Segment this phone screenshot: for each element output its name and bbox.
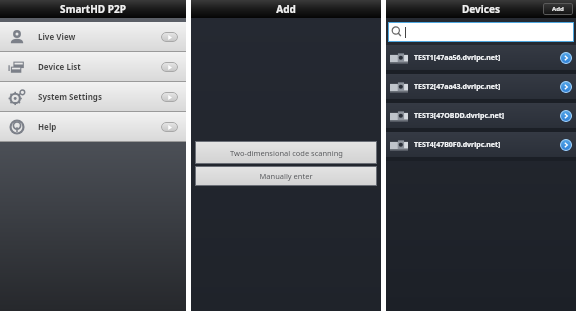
button[interactable]: TEST3[47OBDD.dvripc.net] — [386, 103, 576, 128]
staticText: Add — [276, 2, 296, 16]
staticText: TEST4[47B0F0.dvripc.net] — [414, 140, 501, 150]
button[interactable]: Add — [543, 3, 573, 15]
button[interactable]: TEST4[47B0F0.dvripc.net] — [386, 132, 576, 157]
staticText: TEST3[47OBDD.dvripc.net] — [414, 111, 505, 121]
staticText: TEST1[47aa56.dvripc.net] — [414, 53, 501, 63]
staticText: SmartHD P2P — [60, 2, 126, 16]
button[interactable]: Manually enter — [195, 166, 377, 186]
staticText: Devices — [462, 2, 500, 16]
staticText: TEST2[47aa43.dvripc.net] — [414, 82, 501, 92]
staticText: Manually enter — [259, 171, 313, 181]
staticText: Add — [552, 5, 564, 13]
staticText: Live View — [38, 31, 76, 42]
button[interactable]: Live View — [0, 22, 186, 51]
staticText: Device List — [38, 61, 81, 72]
button[interactable]: TEST1[47aa56.dvripc.net] — [386, 45, 576, 70]
button[interactable]: System Settings — [0, 82, 186, 111]
button[interactable]: Search — [388, 22, 574, 42]
staticText: System Settings — [38, 91, 102, 102]
button[interactable]: TEST2[47aa43.dvripc.net] — [386, 74, 576, 99]
button[interactable]: Help — [0, 112, 186, 141]
staticText: Help — [38, 121, 57, 132]
staticText: Two-dimensional code scanning — [230, 148, 343, 158]
button[interactable]: Device List — [0, 52, 186, 81]
button[interactable]: Two-dimensional code scanning — [195, 141, 377, 164]
